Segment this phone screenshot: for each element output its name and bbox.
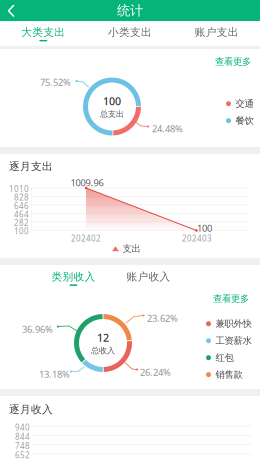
- staticText: 查看更多: [213, 293, 249, 304]
- button[interactable]: 账户支出: [173, 21, 260, 46]
- staticText: 总支出: [100, 109, 124, 119]
- staticText: 652: [15, 450, 30, 460]
- staticText: 小类支出: [108, 26, 152, 39]
- staticText: 交通: [235, 98, 253, 109]
- staticText: 940: [15, 422, 30, 433]
- staticText: 828: [14, 192, 29, 203]
- staticText: 逐月支出: [9, 160, 53, 173]
- staticText: 大类支出: [21, 26, 65, 39]
- staticText: 202402: [71, 233, 101, 244]
- staticText: 100: [103, 94, 121, 108]
- staticText: 36.96%: [22, 323, 53, 335]
- staticText: 282: [14, 217, 29, 228]
- staticText: 1009.96: [70, 176, 103, 189]
- staticText: 红包: [215, 352, 233, 363]
- staticText: 销售款: [215, 369, 242, 380]
- staticText: 13.18%: [39, 368, 70, 380]
- staticText: 464: [14, 209, 29, 220]
- staticText: 总收入: [91, 346, 115, 355]
- staticText: 26.24%: [140, 366, 171, 378]
- staticText: 1010: [9, 184, 29, 194]
- staticText: 餐饮: [235, 115, 253, 126]
- staticText: 24.48%: [152, 122, 183, 135]
- staticText: 账户支出: [195, 26, 239, 39]
- staticText: 12: [97, 330, 109, 345]
- staticText: 支出: [122, 243, 140, 254]
- button[interactable]: 查看更多: [210, 291, 252, 306]
- button[interactable]: 大类支出: [0, 21, 87, 46]
- staticText: 逐月收入: [9, 403, 53, 416]
- button[interactable]: 类别收入: [36, 267, 111, 289]
- staticText: 账户收入: [126, 270, 170, 283]
- staticText: 844: [15, 431, 30, 442]
- staticText: 兼职外快: [215, 318, 251, 329]
- staticText: 统计: [117, 2, 143, 19]
- staticText: 202403: [182, 233, 212, 244]
- staticText: 查看更多: [215, 56, 251, 67]
- staticText: 748: [15, 441, 30, 451]
- button[interactable]: 查看更多: [212, 54, 254, 69]
- staticText: 23.62%: [147, 312, 178, 324]
- button[interactable]: 账户收入: [111, 267, 186, 289]
- button[interactable]: Back: [0, 0, 24, 21]
- button[interactable]: 小类支出: [87, 21, 173, 46]
- staticText: 类别收入: [51, 270, 95, 283]
- staticText: 100: [14, 226, 29, 236]
- staticText: 100: [197, 222, 212, 234]
- staticText: 75.52%: [40, 76, 71, 88]
- staticText: 646: [14, 200, 29, 211]
- staticText: 工资薪水: [215, 335, 251, 346]
